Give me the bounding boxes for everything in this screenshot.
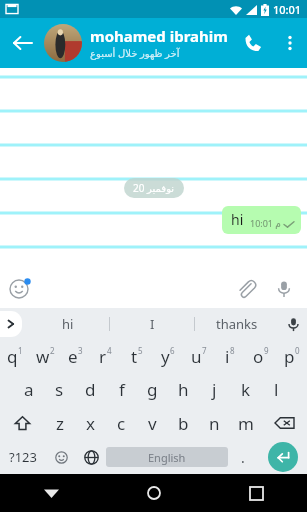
staticText: f <box>119 378 125 401</box>
staticText: mohamed ibrahim <box>90 26 228 46</box>
staticText: v <box>148 412 157 435</box>
staticText: x <box>86 412 95 435</box>
staticText: 10:01 <box>273 2 302 17</box>
button[interactable]: d <box>75 373 106 406</box>
button[interactable]: thanks <box>195 308 279 340</box>
staticText: p <box>284 345 295 368</box>
staticText: hi <box>231 210 244 229</box>
staticText: g <box>147 378 158 401</box>
button[interactable]: Back <box>0 474 103 512</box>
staticText: 4 <box>107 345 112 356</box>
button[interactable]: mohamed ibrahim <box>90 26 233 60</box>
button[interactable]: Emoji keyboard <box>46 440 76 474</box>
button[interactable]: Voice input <box>279 310 307 338</box>
button[interactable]: a <box>14 373 44 406</box>
button[interactable]: . <box>228 440 258 474</box>
staticText: w <box>36 345 50 368</box>
button[interactable]: l <box>261 373 292 406</box>
staticText: h <box>178 378 189 401</box>
button[interactable]: q <box>0 340 30 373</box>
button[interactable]: t <box>121 340 152 373</box>
staticText: i <box>225 345 230 368</box>
button[interactable]: Change language <box>76 440 106 474</box>
button[interactable]: u <box>183 340 214 373</box>
button[interactable]: Send <box>258 440 307 474</box>
button[interactable]: h <box>168 373 199 406</box>
button[interactable]: k <box>230 373 261 406</box>
staticText: b <box>178 412 189 435</box>
staticText: 0 <box>295 345 300 356</box>
button[interactable]: Shift <box>0 406 45 440</box>
button[interactable]: Back <box>0 21 44 65</box>
staticText: y <box>161 345 170 368</box>
staticText: t <box>131 345 138 368</box>
button[interactable]: x <box>75 406 106 440</box>
button[interactable]: hi <box>222 206 301 234</box>
staticText: hi <box>62 315 74 333</box>
button[interactable]: c <box>106 406 137 440</box>
staticText: m <box>238 412 254 435</box>
staticText: . <box>241 448 245 467</box>
button[interactable]: o <box>245 340 276 373</box>
button[interactable]: v <box>137 406 168 440</box>
button[interactable]: y <box>152 340 183 373</box>
staticText: 1 <box>18 345 23 356</box>
staticText: a <box>24 378 34 401</box>
staticText: j <box>212 378 217 401</box>
button[interactable]: s <box>44 373 75 406</box>
button[interactable]: b <box>168 406 199 440</box>
staticText: k <box>241 378 251 401</box>
button[interactable]: Attach <box>227 270 265 308</box>
staticText: q <box>7 345 18 368</box>
staticText: 6 <box>170 345 175 356</box>
staticText: s <box>55 378 64 401</box>
staticText: z <box>56 412 64 435</box>
staticText: 5 <box>138 345 143 356</box>
button[interactable]: n <box>199 406 230 440</box>
button[interactable]: p <box>276 340 307 373</box>
button[interactable]: Expand suggestions <box>0 311 22 337</box>
staticText: r <box>99 345 107 368</box>
button[interactable]: w <box>30 340 60 373</box>
button[interactable]: I <box>110 308 194 340</box>
staticText: 8 <box>230 345 235 356</box>
staticText: u <box>191 345 202 368</box>
staticText: ?123 <box>9 448 37 466</box>
staticText: آخر ظهور خلال أسبوع <box>90 46 180 60</box>
button[interactable]: Backspace <box>261 406 307 440</box>
staticText: 2 <box>50 345 55 356</box>
button[interactable]: i <box>214 340 245 373</box>
button[interactable]: Home <box>103 474 205 512</box>
button[interactable]: m <box>230 406 261 440</box>
button[interactable]: Voice message <box>265 270 303 308</box>
button[interactable]: z <box>45 406 75 440</box>
button[interactable]: g <box>137 373 168 406</box>
button[interactable]: f <box>106 373 137 406</box>
staticText: 3 <box>78 345 83 356</box>
button[interactable]: More options <box>273 26 307 60</box>
staticText: e <box>68 345 78 368</box>
staticText: n <box>209 412 220 435</box>
staticText: I <box>150 315 155 333</box>
button[interactable]: j <box>199 373 230 406</box>
staticText: c <box>117 412 126 435</box>
staticText: 7 <box>202 345 207 356</box>
staticText: English <box>148 450 186 465</box>
button[interactable]: r <box>90 340 121 373</box>
staticText: thanks <box>216 315 258 333</box>
staticText: نوفمبر 20 <box>133 181 175 195</box>
button[interactable]: Recents <box>205 474 307 512</box>
button[interactable]: Call <box>233 23 273 63</box>
button[interactable]: Emoji <box>0 270 38 308</box>
staticText: o <box>253 345 264 368</box>
button[interactable]: hi <box>26 308 109 340</box>
staticText: l <box>274 378 279 401</box>
staticText: م 10:01 <box>250 217 281 229</box>
staticText: d <box>85 378 96 401</box>
button[interactable]: English <box>106 447 228 467</box>
staticText: 9 <box>264 345 269 356</box>
button[interactable]: ?123 <box>0 440 46 474</box>
button[interactable]: e <box>60 340 90 373</box>
